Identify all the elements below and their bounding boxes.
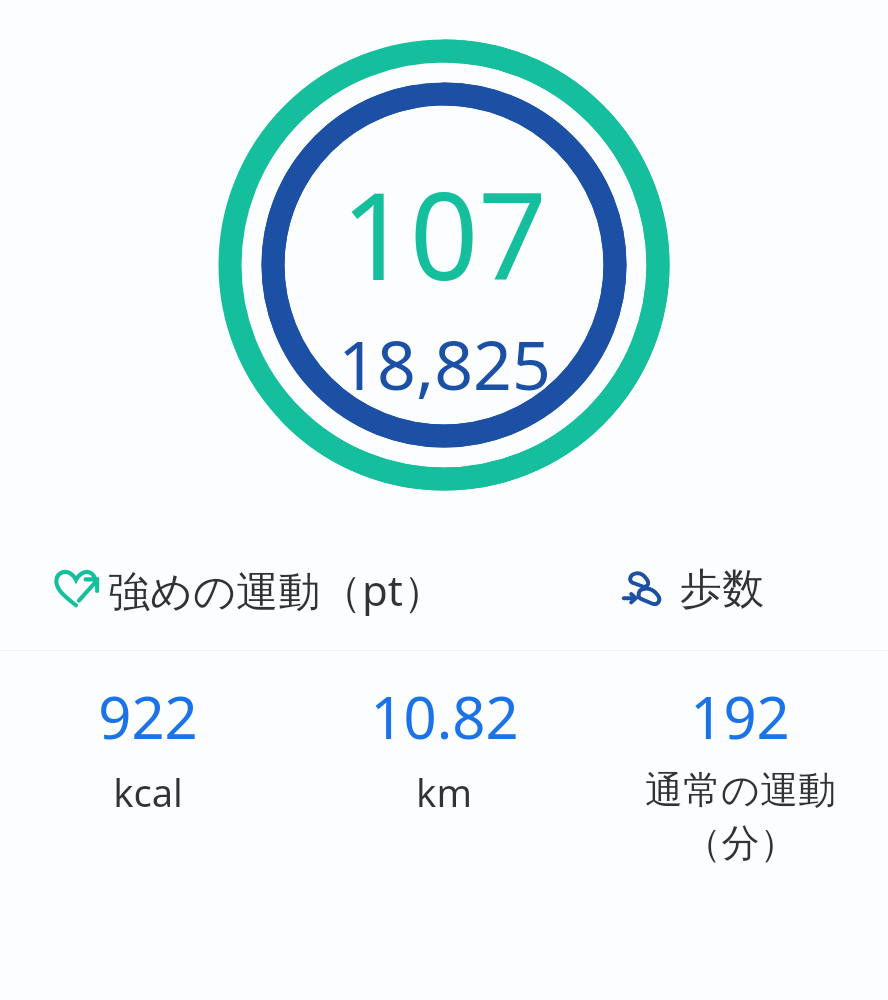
other: Steps [622,566,668,612]
staticText: 強めの運動（pt） [108,561,445,618]
staticText: km [416,766,472,818]
button[interactable]: Heart Points [0,528,497,650]
staticText: 18,825 [338,317,551,410]
button[interactable]: Activity rings [0,0,888,528]
staticText: 922 [98,677,198,756]
button[interactable]: 192 [592,677,888,868]
staticText: 歩数 [680,563,764,616]
staticText: 10.82 [370,677,519,756]
staticText: kcal [113,766,183,818]
staticText: 107 [341,152,547,315]
staticText: 通常の運動 （分） [645,766,836,868]
button[interactable]: 10.82 [296,677,592,818]
button[interactable]: Steps [497,528,888,650]
other: Heart Points [52,565,100,613]
button[interactable]: 922 [0,677,296,818]
staticText: 192 [690,677,790,756]
